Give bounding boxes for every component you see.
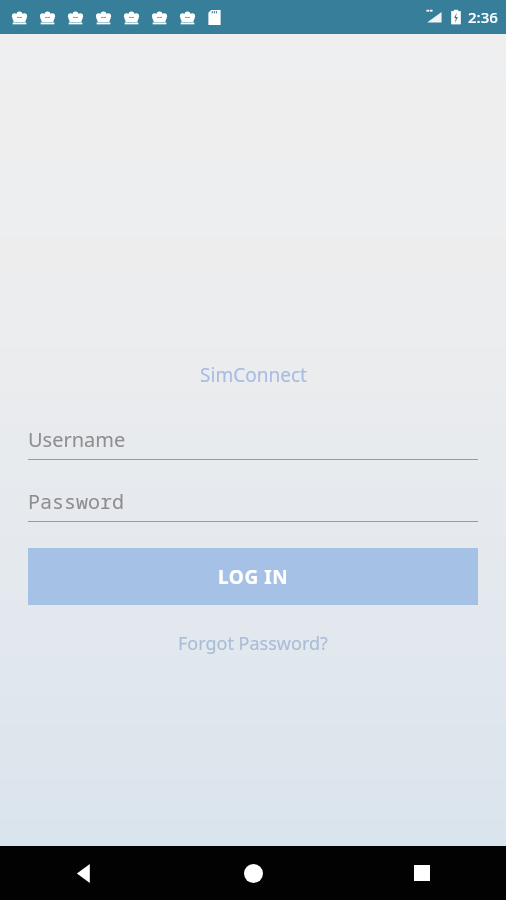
staticText: Password <box>28 488 124 515</box>
staticText: SimConnect <box>200 362 307 388</box>
staticText: LOG IN <box>218 564 289 590</box>
button[interactable]: Forgot Password? <box>178 631 328 656</box>
button[interactable]: Password <box>28 488 478 522</box>
button[interactable]: Recent apps <box>399 850 445 896</box>
staticText: 2:36 <box>468 7 498 27</box>
button[interactable]: Username <box>28 426 478 460</box>
staticText: Username <box>28 426 126 453</box>
button[interactable]: LOG IN <box>28 548 478 605</box>
button[interactable]: Back <box>61 850 107 896</box>
button[interactable]: Home <box>230 850 276 896</box>
staticText: Forgot Password? <box>178 631 328 656</box>
